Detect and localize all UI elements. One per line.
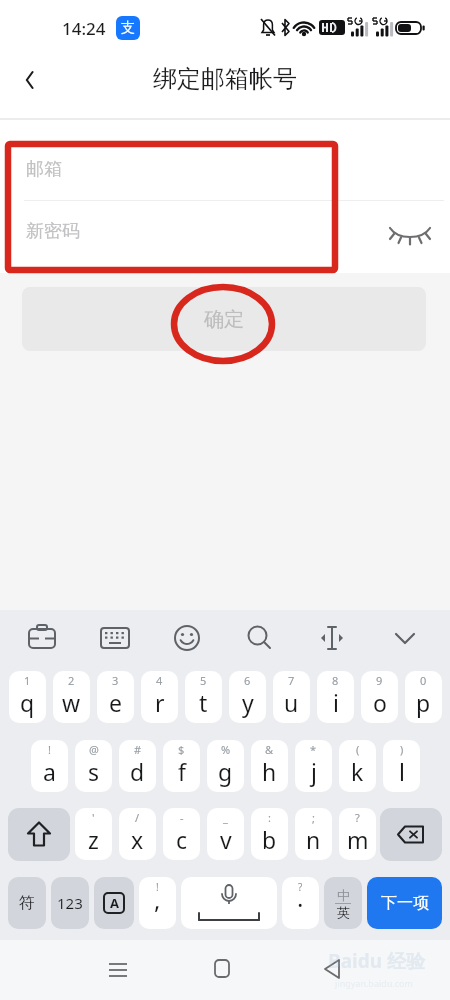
button[interactable]: ?: [339, 808, 376, 860]
staticText: o: [373, 687, 387, 718]
button[interactable]: 确定: [22, 287, 426, 351]
staticText: 14:24: [62, 17, 106, 40]
staticText: Baidu 经验: [328, 948, 425, 974]
button[interactable]: 9: [361, 671, 398, 723]
button[interactable]: &: [251, 740, 288, 792]
button[interactable]: [379, 615, 431, 661]
button[interactable]: [161, 615, 213, 661]
staticText: i: [333, 687, 339, 718]
button[interactable]: $: [163, 740, 200, 792]
staticText: 6: [244, 673, 251, 688]
staticText: c: [176, 824, 188, 855]
button[interactable]: [96, 948, 140, 992]
button[interactable]: *: [295, 740, 332, 792]
button[interactable]: 8: [317, 671, 354, 723]
staticText: g: [218, 756, 233, 787]
staticText: ?: [355, 810, 360, 825]
staticText: x: [131, 824, 144, 855]
button[interactable]: %: [207, 740, 244, 792]
staticText: u: [284, 687, 299, 718]
staticText: ): [400, 742, 404, 757]
button[interactable]: 符: [8, 877, 46, 929]
button[interactable]: 0: [405, 671, 442, 723]
staticText: 邮箱: [26, 158, 62, 181]
staticText: (: [356, 742, 360, 757]
staticText: y: [242, 687, 254, 718]
staticText: z: [88, 824, 99, 855]
button[interactable]: (: [339, 740, 376, 792]
staticText: 123: [57, 893, 83, 913]
button[interactable]: _: [207, 808, 244, 860]
staticText: ': [92, 810, 95, 825]
button[interactable]: -: [163, 808, 200, 860]
button[interactable]: !: [139, 877, 176, 929]
button[interactable]: 5: [185, 671, 222, 723]
button[interactable]: 下一项: [367, 877, 442, 929]
button[interactable]: 7: [273, 671, 310, 723]
staticText: 7: [288, 673, 295, 688]
button[interactable]: [8, 808, 70, 861]
staticText: 绑定邮箱帐号: [153, 64, 297, 94]
staticText: m: [347, 824, 369, 855]
staticText: ?: [298, 880, 303, 894]
button[interactable]: [311, 948, 355, 992]
button[interactable]: 2: [53, 671, 90, 723]
button[interactable]: !: [31, 740, 68, 792]
button[interactable]: [306, 615, 358, 661]
button[interactable]: :: [251, 808, 288, 860]
staticText: t: [199, 687, 208, 718]
staticText: k: [351, 756, 364, 787]
button[interactable]: @: [75, 740, 112, 792]
staticText: 1: [24, 673, 31, 688]
staticText: _: [223, 810, 228, 825]
staticText: $: [178, 742, 185, 757]
staticText: h: [262, 756, 277, 787]
button[interactable]: [181, 877, 277, 929]
staticText: j: [311, 756, 317, 787]
button[interactable]: [234, 615, 286, 661]
button[interactable]: 中: [324, 877, 362, 929]
button[interactable]: ;: [295, 808, 332, 860]
staticText: e: [109, 687, 122, 718]
button[interactable]: 4: [141, 671, 178, 723]
staticText: 8: [332, 673, 339, 688]
button[interactable]: #: [119, 740, 156, 792]
staticText: 符: [19, 893, 35, 913]
button[interactable]: 6: [229, 671, 266, 723]
staticText: 支: [121, 19, 135, 37]
button[interactable]: 123: [51, 877, 89, 929]
button[interactable]: [380, 808, 442, 861]
button[interactable]: ): [383, 740, 420, 792]
staticText: @: [89, 742, 99, 757]
button[interactable]: ?: [282, 877, 319, 929]
button[interactable]: 1: [9, 671, 46, 723]
button[interactable]: 邮箱: [0, 141, 450, 201]
button[interactable]: 3: [97, 671, 134, 723]
staticText: 下一项: [381, 893, 429, 913]
staticText: q: [20, 687, 35, 718]
staticText: %: [221, 742, 231, 757]
button[interactable]: ': [75, 808, 112, 860]
staticText: 新密码: [26, 220, 80, 243]
staticText: 3: [112, 673, 119, 688]
staticText: !: [48, 742, 51, 757]
button[interactable]: /: [119, 808, 156, 860]
staticText: f: [178, 756, 186, 787]
button[interactable]: [16, 615, 68, 661]
staticText: p: [416, 687, 431, 718]
button[interactable]: [89, 615, 141, 661]
staticText: r: [155, 687, 165, 718]
button[interactable]: [200, 948, 244, 992]
staticText: ;: [312, 810, 315, 825]
staticText: #: [134, 742, 142, 757]
staticText: 英: [337, 904, 350, 920]
staticText: b: [262, 824, 277, 855]
staticText: /: [135, 810, 140, 825]
button[interactable]: A: [94, 877, 134, 929]
button[interactable]: 新密码: [0, 201, 450, 273]
button[interactable]: [384, 218, 436, 260]
button[interactable]: [8, 58, 52, 102]
staticText: A: [110, 894, 119, 912]
staticText: .: [297, 881, 304, 914]
staticText: 5: [200, 673, 207, 688]
